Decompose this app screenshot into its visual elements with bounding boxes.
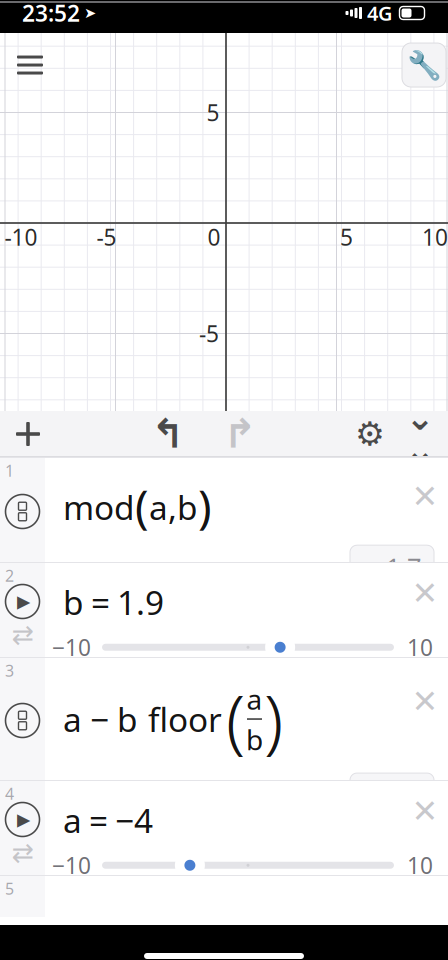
staticText: ⇄	[11, 837, 33, 868]
button[interactable]: Delete expression	[405, 791, 445, 831]
button[interactable]: Delete expression	[405, 681, 445, 721]
staticText: b	[246, 721, 263, 758]
button[interactable]: Delete expression	[405, 573, 445, 613]
staticText: )	[264, 673, 283, 765]
staticText: mod	[63, 485, 135, 529]
button[interactable]: Graph settings	[402, 43, 446, 87]
staticText: −4	[115, 798, 153, 842]
staticText: a	[246, 680, 262, 717]
staticText: floor	[148, 697, 222, 741]
staticText: ✕	[411, 478, 438, 515]
staticText: ➤	[84, 5, 96, 21]
staticText: 1	[5, 460, 14, 481]
button[interactable]: Toggle slider	[7, 840, 37, 864]
button[interactable]: Expression options	[5, 703, 39, 737]
staticText: =	[89, 798, 108, 842]
staticText: ▶	[17, 810, 30, 829]
button[interactable]: Play animation	[5, 802, 39, 836]
button[interactable]: Collapse list	[402, 411, 438, 457]
staticText: 1.7	[386, 550, 421, 584]
staticText: =	[363, 550, 377, 584]
staticText: -5	[199, 318, 219, 348]
staticText: 10	[422, 222, 448, 252]
staticText: a	[63, 798, 82, 842]
staticText: ⌄	[405, 398, 434, 437]
staticText: 5	[5, 878, 14, 899]
staticText: ⌄	[405, 430, 434, 470]
staticText: =	[91, 580, 110, 624]
button[interactable]: Redo	[219, 411, 261, 457]
button[interactable]: Add expression	[0, 411, 56, 457]
staticText: (	[135, 476, 149, 536]
staticText: ✕	[411, 793, 438, 829]
staticText: ⇄	[11, 619, 33, 650]
button[interactable]: Delete expression	[405, 476, 445, 516]
button[interactable]: Menu	[8, 43, 52, 87]
staticText: ↰	[151, 411, 185, 457]
button[interactable]: Expression options	[5, 494, 39, 528]
button[interactable]: Toggle slider	[7, 622, 37, 646]
button[interactable]: Play animation	[5, 584, 39, 618]
staticText: 4	[5, 783, 14, 804]
staticText: b	[63, 580, 84, 624]
staticText: 4G	[367, 0, 393, 26]
staticText: 🔧	[406, 49, 441, 81]
staticText: -10	[4, 222, 37, 252]
staticText: ✕	[411, 683, 438, 719]
staticText: 10	[407, 632, 433, 662]
staticText: 1.7	[386, 778, 421, 812]
button[interactable]: Undo	[147, 411, 189, 457]
staticText: 5	[206, 97, 219, 127]
staticText: 23:52	[22, 0, 80, 28]
staticText: )	[198, 476, 212, 536]
staticText: −10	[52, 632, 91, 662]
staticText: =	[363, 778, 377, 812]
staticText: b	[117, 697, 138, 741]
staticText: -5	[96, 222, 116, 252]
staticText: 1.9	[117, 580, 164, 624]
staticText: −10	[52, 850, 91, 880]
staticText: 0	[207, 222, 220, 252]
staticText: a	[63, 697, 82, 741]
button[interactable]: Settings	[352, 411, 388, 457]
staticText: −	[90, 697, 109, 741]
staticText: 3	[5, 660, 14, 681]
staticText: ⚙	[355, 415, 385, 453]
staticText: ✕	[411, 575, 438, 611]
staticText: 5	[340, 222, 353, 252]
staticText: a,b	[149, 485, 198, 529]
staticText: ▶	[17, 592, 30, 611]
staticText: (	[226, 673, 245, 765]
staticText: ↱	[223, 411, 257, 457]
staticText: 2	[5, 565, 14, 586]
staticText: 10	[407, 850, 433, 880]
